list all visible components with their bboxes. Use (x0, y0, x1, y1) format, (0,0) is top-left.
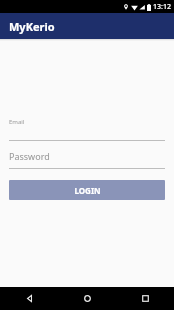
button[interactable]: Recent apps (116, 287, 174, 310)
staticText: Email (9, 118, 25, 126)
button[interactable]: Password (9, 150, 165, 169)
staticText: LOGIN (74, 185, 101, 196)
button[interactable]: Back (0, 287, 58, 310)
button[interactable]: Email (9, 118, 165, 141)
staticText: Password (9, 150, 50, 162)
button[interactable]: LOGIN (9, 180, 165, 200)
staticText: 13:12 (153, 2, 171, 12)
button[interactable]: Home (58, 287, 116, 310)
staticText: MyKerio (9, 19, 55, 34)
